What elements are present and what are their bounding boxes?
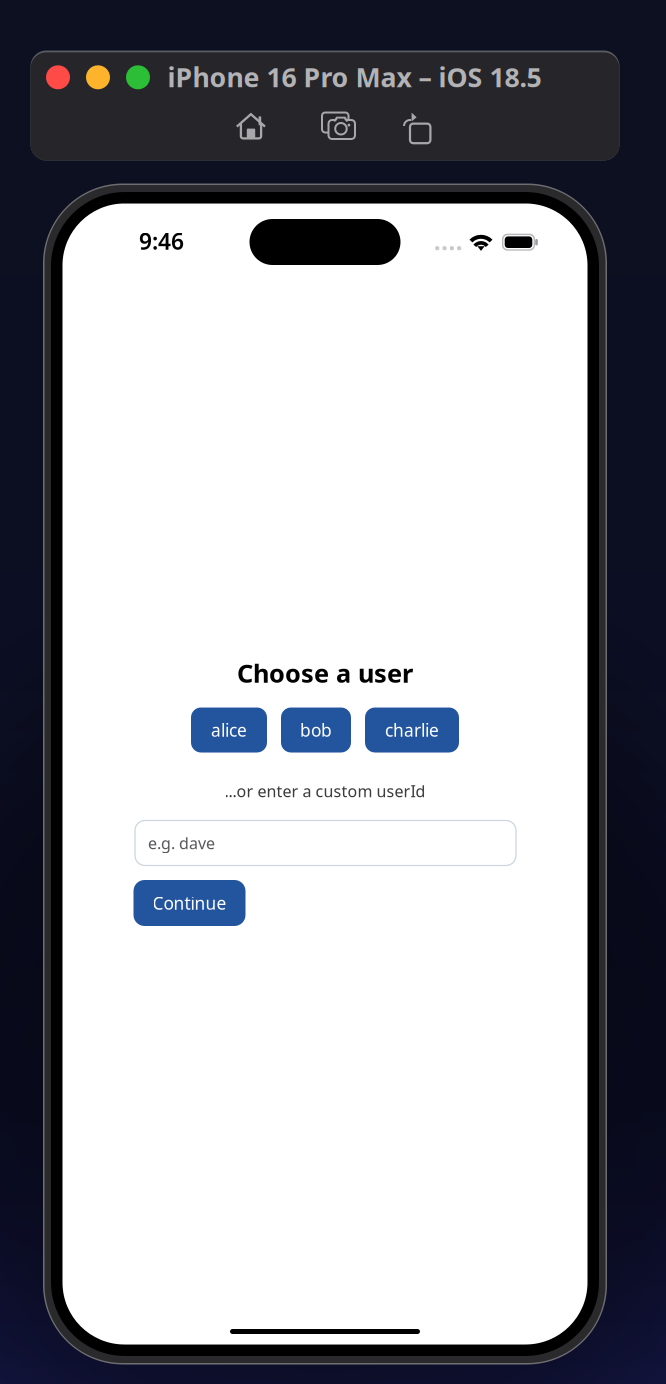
- button[interactable]: Share: [402, 108, 430, 144]
- button[interactable]: Continue: [133, 880, 245, 926]
- staticText: 9:46: [139, 226, 184, 256]
- staticText: charlie: [385, 718, 439, 741]
- button[interactable]: alice: [191, 707, 267, 752]
- button[interactable]: Close: [46, 65, 70, 89]
- button[interactable]: Home: [235, 112, 266, 140]
- staticText: Choose a user: [237, 656, 413, 690]
- staticText: Continue: [152, 891, 226, 914]
- button[interactable]: Screenshot: [322, 112, 356, 139]
- button[interactable]: e.g. dave: [135, 820, 516, 865]
- staticText: e.g. dave: [148, 832, 215, 854]
- staticText: bob: [300, 718, 332, 741]
- staticText: alice: [211, 718, 247, 741]
- button[interactable]: Zoom: [126, 65, 150, 89]
- button[interactable]: charlie: [365, 707, 459, 752]
- button[interactable]: Minimise: [86, 65, 110, 89]
- staticText: iPhone 16 Pro Max – iOS 18.5: [167, 59, 541, 95]
- button[interactable]: bob: [281, 707, 351, 752]
- staticText: ...or enter a custom userId: [224, 780, 425, 802]
